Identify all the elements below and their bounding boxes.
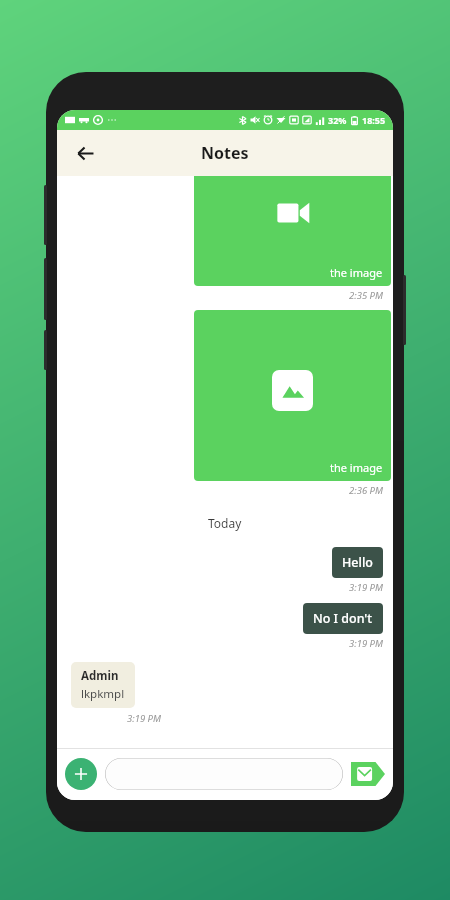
button[interactable]: Hello	[332, 547, 383, 578]
staticText: Today	[208, 515, 242, 531]
button[interactable]: the image	[194, 176, 391, 286]
button[interactable]: Send	[351, 759, 385, 789]
staticText: No I don't	[313, 610, 373, 627]
staticText: 18:55	[362, 114, 386, 126]
staticText: 3:19 PM	[349, 581, 383, 594]
staticText: lkpkmpl	[81, 686, 125, 702]
staticText: 2:36 PM	[349, 484, 383, 497]
staticText: Hello	[342, 554, 373, 571]
staticText: Admin	[81, 668, 119, 684]
button[interactable]	[105, 758, 343, 790]
button[interactable]: Add attachment	[65, 758, 97, 790]
button[interactable]: the image	[194, 310, 391, 481]
button[interactable]: Admin	[71, 662, 135, 708]
staticText: 3:19 PM	[127, 712, 161, 725]
button[interactable]: Back	[67, 135, 103, 171]
button[interactable]: No I don't	[303, 603, 383, 634]
staticText: 2:35 PM	[349, 289, 383, 302]
staticText: the image	[330, 460, 383, 475]
staticText: 32%	[328, 114, 347, 126]
staticText: the image	[330, 265, 383, 280]
staticText: Notes	[201, 142, 249, 164]
staticText: 3:19 PM	[349, 637, 383, 650]
